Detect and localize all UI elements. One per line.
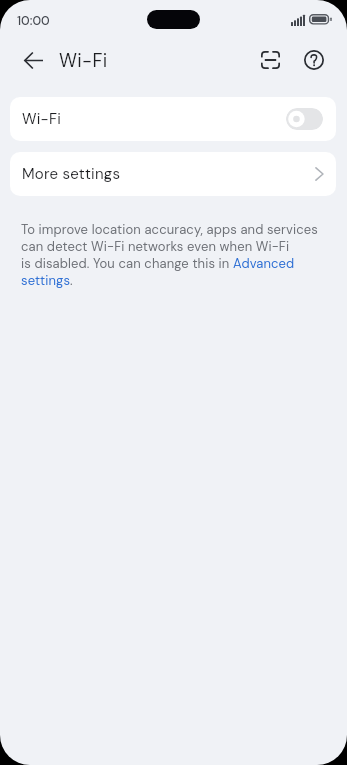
staticText: Wi-Fi xyxy=(22,109,62,129)
button[interactable]: More settings xyxy=(10,152,336,196)
button[interactable]: Wi-Fi xyxy=(10,97,336,141)
staticText: 10:00 xyxy=(17,13,50,29)
staticText: Wi-Fi xyxy=(59,49,108,73)
staticText: To improve location accuracy, apps and s… xyxy=(21,221,318,289)
button[interactable]: Wi-Fi toggle, off xyxy=(286,108,323,130)
button[interactable]: Scan QR code xyxy=(249,39,291,81)
staticText: More settings xyxy=(22,164,121,184)
button[interactable]: Navigate up xyxy=(12,39,54,81)
button[interactable]: Help xyxy=(293,39,335,81)
